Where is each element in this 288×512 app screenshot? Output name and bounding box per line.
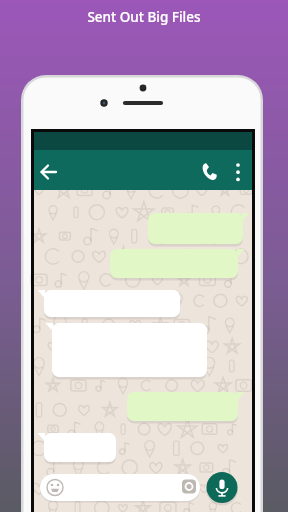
button[interactable]: Call (198, 160, 222, 184)
staticText: Sent Out Big Files (0, 8, 288, 512)
button[interactable]: More options (228, 160, 250, 182)
button[interactable]: Camera (181, 464, 201, 484)
button[interactable]: Emoji (44, 463, 66, 485)
button[interactable]: Back (38, 160, 62, 184)
button[interactable]: Voice message (206, 459, 238, 491)
